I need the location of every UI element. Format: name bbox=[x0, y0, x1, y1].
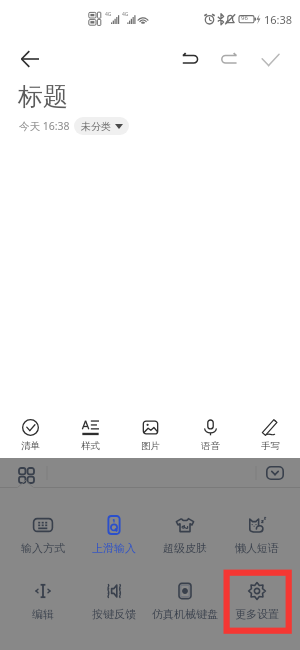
button[interactable]: 手写 bbox=[240, 406, 300, 458]
button[interactable]: 语音 bbox=[180, 406, 240, 458]
button[interactable]: Collapse keyboard bbox=[266, 466, 284, 480]
button[interactable]: 仿真机械键盘 bbox=[149, 573, 221, 639]
staticText: 今天 16:38 bbox=[19, 119, 70, 133]
staticText: 编辑 bbox=[32, 607, 54, 621]
button[interactable]: Back bbox=[12, 41, 48, 77]
staticText: 超级皮肤 bbox=[163, 541, 207, 555]
staticText: 96 bbox=[241, 14, 248, 22]
button[interactable]: Done bbox=[252, 41, 288, 77]
button[interactable]: 更多设置 bbox=[221, 573, 293, 639]
staticText: 输入方式 bbox=[21, 541, 65, 555]
button[interactable]: Redo bbox=[211, 41, 247, 77]
staticText: 16:38 bbox=[264, 12, 293, 27]
staticText: 上滑输入 bbox=[92, 541, 136, 555]
button[interactable]: 未分类 bbox=[74, 117, 129, 135]
button[interactable]: Undo bbox=[172, 41, 208, 77]
staticText: 4G bbox=[122, 11, 129, 18]
staticText: 未分类 bbox=[81, 120, 111, 133]
staticText: 4G bbox=[105, 11, 112, 18]
button[interactable]: 输入方式 bbox=[7, 507, 78, 573]
button[interactable]: 样式 bbox=[60, 406, 120, 458]
staticText: 仿真机械键盘 bbox=[152, 607, 218, 621]
button[interactable]: 清单 bbox=[0, 406, 60, 458]
button[interactable]: 上滑输入 bbox=[78, 507, 149, 573]
button[interactable]: 按键反馈 bbox=[78, 573, 149, 639]
button[interactable]: 懒人短语 bbox=[221, 507, 293, 573]
button[interactable]: Apps bbox=[12, 461, 40, 489]
staticText: 语音 bbox=[201, 440, 220, 452]
staticText: 清单 bbox=[21, 440, 40, 452]
staticText: 手写 bbox=[261, 440, 280, 452]
staticText: 懒人短语 bbox=[235, 541, 279, 555]
button[interactable]: 超级皮肤 bbox=[149, 507, 221, 573]
button[interactable]: 图片 bbox=[120, 406, 180, 458]
staticText: 样式 bbox=[81, 440, 100, 452]
staticText: 标题 bbox=[18, 81, 68, 112]
staticText: 图片 bbox=[141, 440, 160, 452]
staticText: 按键反馈 bbox=[92, 607, 136, 621]
staticText: 更多设置 bbox=[235, 607, 279, 621]
button[interactable]: 编辑 bbox=[7, 573, 78, 639]
